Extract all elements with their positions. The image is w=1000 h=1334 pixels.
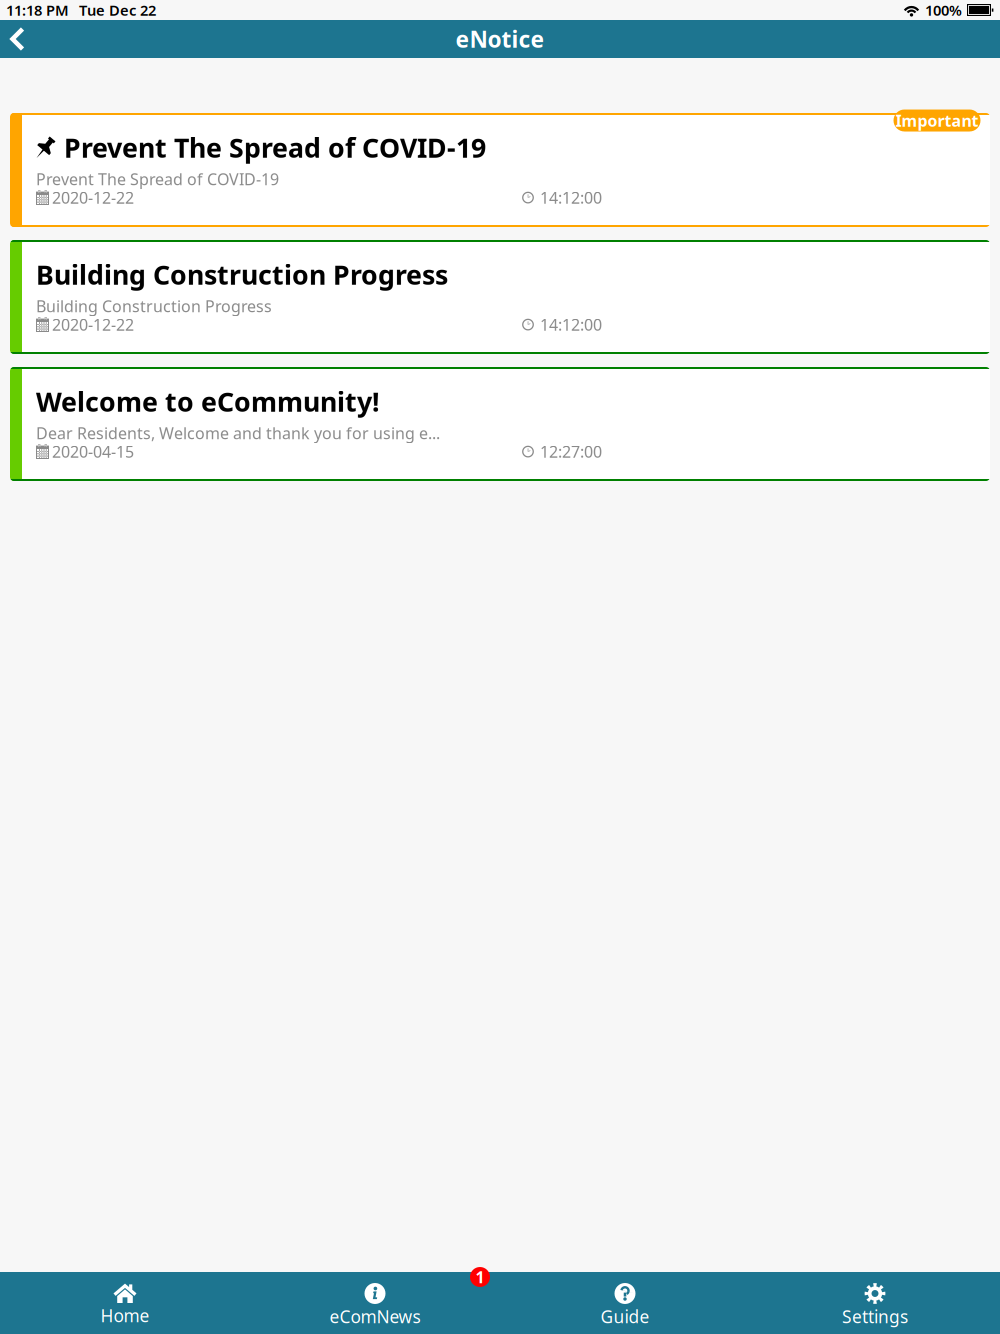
staticText: Guide <box>600 1305 649 1328</box>
button[interactable]: Welcome to eCommunity! <box>10 367 990 481</box>
button[interactable]: Prevent The Spread of COVID-19 <box>10 113 990 227</box>
button[interactable]: Building Construction Progress <box>10 240 990 354</box>
staticText: 2020-12-22 <box>52 314 134 335</box>
button[interactable]: Guide <box>500 1272 750 1334</box>
button[interactable]: Home <box>0 1272 250 1334</box>
staticText: Important <box>895 110 978 131</box>
staticText: 14:12:00 <box>540 187 602 208</box>
staticText: Prevent The Spread of COVID-19 <box>64 130 486 165</box>
staticText: eNotice <box>455 24 544 54</box>
button[interactable]: Back <box>0 20 38 58</box>
button[interactable]: Settings <box>750 1272 1000 1334</box>
staticText: Welcome to eCommunity! <box>36 384 380 419</box>
staticText: Tue Dec 22 <box>79 0 156 20</box>
staticText: 2020-12-22 <box>52 187 134 208</box>
staticText: 100% <box>925 0 962 20</box>
staticText: Home <box>100 1304 149 1327</box>
button[interactable]: eComNews <box>250 1272 500 1334</box>
staticText: 11:18 PM <box>6 0 69 20</box>
staticText: Building Construction Progress <box>36 295 272 317</box>
staticText: Dear Residents, Welcome and thank you fo… <box>36 422 440 444</box>
staticText: 2020-04-15 <box>52 441 134 462</box>
staticText: 1 <box>475 1266 484 1288</box>
staticText: Prevent The Spread of COVID-19 <box>36 168 279 190</box>
staticText: Building Construction Progress <box>36 257 448 292</box>
staticText: eComNews <box>329 1305 420 1328</box>
staticText: Settings <box>842 1305 908 1328</box>
staticText: 12:27:00 <box>540 441 602 462</box>
staticText: 14:12:00 <box>540 314 602 335</box>
